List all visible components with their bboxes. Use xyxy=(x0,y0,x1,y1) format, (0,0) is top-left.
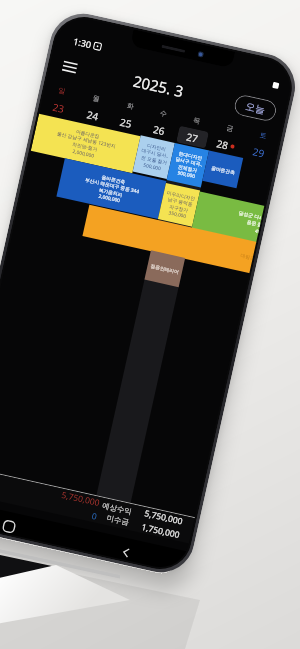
button[interactable]: 디자인리 xyxy=(133,135,175,179)
staticText: 1,750,000 xyxy=(140,521,181,541)
staticText: 복가움처리 xyxy=(98,187,123,198)
staticText: 40 xyxy=(254,227,259,235)
staticText: 용문 철 xyxy=(246,218,261,228)
button[interactable]: 아름다운집 xyxy=(31,114,140,173)
staticText: 500,000 xyxy=(142,162,162,172)
staticText: 29 xyxy=(251,144,266,160)
button[interactable]: 현대디자인 xyxy=(167,143,209,188)
button[interactable]: 미우리디자인 xyxy=(158,183,200,227)
staticText: 자구창가 xyxy=(168,203,189,213)
staticText: 달서구 대곡.. xyxy=(175,155,204,168)
staticText: 5,750,000 xyxy=(143,507,184,527)
staticText: 토 xyxy=(259,130,267,140)
button[interactable]: 철용인테리어 xyxy=(144,250,185,287)
staticText: 처진당-철거 xyxy=(71,141,98,153)
button[interactable]: Home xyxy=(0,514,21,536)
button[interactable]: 대림건 xyxy=(82,205,256,273)
staticText: 27 xyxy=(185,129,200,146)
staticText: 2025. 3 xyxy=(131,71,185,101)
staticText: 350,000 xyxy=(168,209,187,220)
staticText: 목 xyxy=(192,115,201,126)
staticText: 대구시 달서.. xyxy=(141,147,170,160)
button[interactable]: Menu xyxy=(56,52,84,81)
staticText: 울산 강남구 세남동 123번지 xyxy=(56,130,116,150)
staticText: 현대디자인 xyxy=(178,150,203,161)
staticText: 금 xyxy=(225,123,234,133)
staticText: 2,000,000 xyxy=(98,193,121,204)
button[interactable]: 오늘 xyxy=(233,93,278,123)
staticText: 철용인테리어 xyxy=(150,263,180,275)
staticText: 미우리디자인 xyxy=(166,189,196,202)
button[interactable]: 달성군 다사 xyxy=(192,191,264,243)
staticText: 올바른건축 xyxy=(101,174,126,185)
staticText: 전체철거 xyxy=(177,163,198,173)
staticText: 28 xyxy=(215,136,230,152)
staticText: 전 모듈 철거 xyxy=(140,154,168,167)
staticText: 달성군 다사 xyxy=(237,209,262,221)
staticText: 미수금 xyxy=(106,513,130,527)
button[interactable]: 올바른건축 xyxy=(56,158,166,219)
staticText: 오늘 xyxy=(244,99,266,116)
staticText: 25 xyxy=(119,115,133,131)
staticText: 월 xyxy=(92,93,101,103)
staticText: 올바른건축 xyxy=(211,164,235,176)
staticText: 대림건 xyxy=(239,252,253,260)
staticText: 1:30 xyxy=(72,35,93,50)
staticText: 화 xyxy=(126,101,135,111)
staticText: 5,750,000 xyxy=(60,489,101,509)
staticText: 24 xyxy=(85,107,100,124)
staticText: 일 xyxy=(58,85,66,96)
staticText: 0 xyxy=(91,510,98,523)
button[interactable]: 올바른건축 xyxy=(202,150,243,188)
staticText: 26 xyxy=(152,122,167,138)
staticText: 부산시 해운대구 중동 344 xyxy=(84,176,140,195)
staticText: 아름다운집 xyxy=(75,128,100,139)
staticText: 900,000 xyxy=(177,169,196,180)
button[interactable]: Back xyxy=(114,540,138,562)
staticText: 23 xyxy=(51,100,66,116)
staticText: 수 xyxy=(159,108,168,118)
staticText: 예상수익 xyxy=(101,501,133,516)
staticText: 2,000,000 xyxy=(72,148,95,160)
staticText: 남구 용덕동 xyxy=(167,196,194,208)
staticText: 디자인리 xyxy=(146,142,167,152)
